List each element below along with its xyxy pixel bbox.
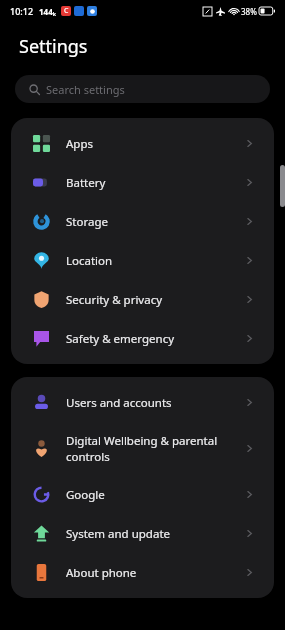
button[interactable]: Search settings [15, 75, 270, 103]
staticText: Google [66, 487, 237, 503]
staticText: Apps [66, 136, 237, 152]
staticText: Battery [66, 175, 237, 191]
button[interactable]: Google [11, 475, 274, 514]
staticText: C [64, 6, 69, 16]
staticText: Security & privacy [66, 292, 237, 308]
staticText: Location [66, 253, 237, 269]
button[interactable]: Safety & emergency [11, 319, 274, 358]
staticText: Storage [66, 214, 237, 230]
staticText: Safety & emergency [66, 331, 237, 347]
staticText: Digital Wellbeing & parental controls [66, 433, 237, 464]
staticText: Settings [19, 34, 88, 59]
staticText: 38% [241, 6, 257, 17]
button[interactable]: Digital Wellbeing & parental controls [11, 422, 274, 475]
staticText: About phone [66, 565, 237, 581]
staticText: Search settings [46, 82, 125, 97]
button[interactable]: Apps [11, 124, 274, 163]
staticText: System and update [66, 526, 237, 542]
button[interactable]: Storage [11, 202, 274, 241]
button[interactable]: About phone [11, 553, 274, 592]
button[interactable]: Battery [11, 163, 274, 202]
button[interactable]: Location [11, 241, 274, 280]
button[interactable]: Users and accounts [11, 383, 274, 422]
button[interactable]: Security & privacy [11, 280, 274, 319]
staticText: Users and accounts [66, 395, 237, 411]
staticText: 144ₖ [39, 6, 56, 17]
button[interactable]: System and update [11, 514, 274, 553]
staticText: 10:12 [10, 5, 34, 17]
